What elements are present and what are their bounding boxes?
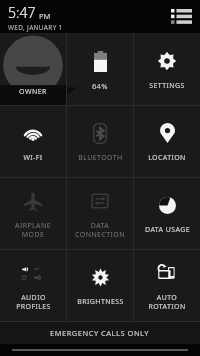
button[interactable]: Settings xyxy=(134,34,200,105)
staticText: WED, JANUARY 1 xyxy=(8,23,63,32)
staticText: AUDIO PROFILES xyxy=(16,293,51,311)
staticText: 64% xyxy=(92,81,108,91)
button[interactable]: Location xyxy=(134,106,200,177)
button[interactable]: Bluetooth xyxy=(67,106,133,177)
staticText: BLUETOOTH xyxy=(78,153,123,163)
staticText: OWNER xyxy=(19,87,47,97)
button[interactable]: Owner user xyxy=(0,34,66,105)
button[interactable]: Toggle quick settings list xyxy=(168,4,194,30)
button[interactable]: EMERGENCY CALLS ONLY xyxy=(0,322,200,344)
staticText: LOCATION xyxy=(148,153,186,163)
button[interactable]: Auto rotation xyxy=(134,250,200,321)
staticText: AIRPLANE MODE xyxy=(15,221,51,239)
button[interactable]: Data connection xyxy=(67,178,133,249)
button[interactable]: Close panel handle xyxy=(0,344,200,356)
staticText: AUTO ROTATION xyxy=(148,293,186,311)
staticText: WI-FI xyxy=(23,153,43,163)
button[interactable]: Brightness xyxy=(67,250,133,321)
button[interactable]: Wi-Fi xyxy=(0,106,66,177)
button[interactable]: Data usage xyxy=(134,178,200,249)
staticText: PM xyxy=(39,11,51,21)
button[interactable]: Airplane mode xyxy=(0,178,66,249)
staticText: DATA CONNECTION xyxy=(75,221,125,239)
staticText: EMERGENCY CALLS ONLY xyxy=(50,328,150,338)
staticText: BRIGHTNESS xyxy=(77,297,124,307)
button[interactable]: Audio profiles xyxy=(0,250,66,321)
button[interactable]: Battery 64 percent xyxy=(67,34,133,105)
staticText: DATA USAGE xyxy=(145,225,190,235)
staticText: SETTINGS xyxy=(149,81,185,91)
staticText: 5:47 xyxy=(8,3,36,22)
